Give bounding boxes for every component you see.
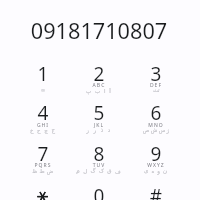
staticText: 6 <box>128 100 184 126</box>
staticText: 4 <box>15 100 71 126</box>
staticText: JKL <box>71 122 127 129</box>
staticText: ج چ ح خ <box>15 126 71 133</box>
button[interactable]: 0 <box>71 178 127 200</box>
button[interactable]: 8 <box>71 136 127 175</box>
staticText: 09181710807 <box>7 16 191 46</box>
staticText: ن و ه ی <box>128 167 184 174</box>
button[interactable]: 3 <box>128 56 184 95</box>
staticText: ض ط ظ <box>15 167 71 174</box>
button[interactable]: 2 <box>71 56 127 95</box>
staticText: آ ا ب پ <box>71 87 127 94</box>
staticText: 9 <box>128 141 184 167</box>
staticText: ف ق ک گ ل م <box>71 167 127 174</box>
staticText: 7 <box>15 141 71 167</box>
staticText: WXYZ <box>128 162 184 169</box>
button[interactable]: 9 <box>128 136 184 175</box>
button[interactable]: star <box>15 178 71 200</box>
button[interactable]: 6 <box>128 95 184 134</box>
staticText: MNO <box>128 122 184 129</box>
staticText: ژ س ش ص <box>128 126 184 133</box>
staticText: ∞ <box>15 87 71 93</box>
staticText: 0 <box>71 183 127 200</box>
staticText: 5 <box>71 100 127 126</box>
button[interactable]: 7 <box>15 136 71 175</box>
staticText: 3 <box>128 61 184 87</box>
staticText: PQRS <box>15 162 71 169</box>
staticText: DEF <box>128 82 184 89</box>
staticText: تث <box>128 87 184 93</box>
button[interactable]: 1 <box>15 56 71 95</box>
staticText: TUV <box>71 162 127 169</box>
staticText: 2 <box>71 61 127 87</box>
button[interactable] <box>8 16 192 44</box>
staticText: # <box>128 183 184 200</box>
staticText: 1 <box>15 61 71 87</box>
staticText: 8 <box>71 141 127 167</box>
staticText: GHI <box>15 122 71 129</box>
button[interactable]: 4 <box>15 95 71 134</box>
staticText: د ذ ر ز <box>71 126 127 133</box>
staticText: ABC <box>71 82 127 89</box>
button[interactable]: # <box>128 178 184 200</box>
button[interactable]: 5 <box>71 95 127 134</box>
